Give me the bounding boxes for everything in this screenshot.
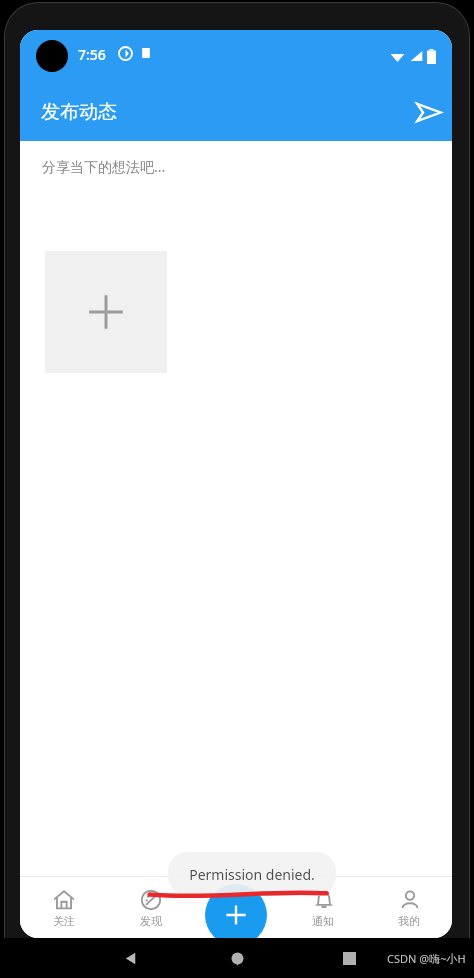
staticText: 发现 bbox=[140, 914, 162, 928]
button[interactable]: 通知 bbox=[280, 877, 366, 938]
staticText: 关注 bbox=[53, 914, 75, 928]
staticText: 发布动态 bbox=[41, 100, 117, 124]
button[interactable]: Add post bbox=[205, 884, 267, 938]
staticText: CSDN @嗨~小H bbox=[387, 951, 466, 966]
staticText: 7:56 bbox=[78, 45, 106, 64]
button[interactable]: 发现 bbox=[107, 877, 194, 938]
staticText: 我的 bbox=[398, 914, 420, 928]
button[interactable]: Send bbox=[404, 88, 452, 136]
staticText: Permission denied. bbox=[189, 865, 315, 884]
button[interactable]: Add image bbox=[45, 251, 167, 373]
staticText: 分享当下的想法吧... bbox=[42, 157, 166, 176]
button[interactable]: 关注 bbox=[20, 877, 107, 938]
button[interactable]: 我的 bbox=[366, 877, 452, 938]
button[interactable]: Home bbox=[230, 951, 245, 966]
button[interactable]: Back bbox=[124, 951, 139, 966]
staticText: 通知 bbox=[312, 914, 334, 928]
